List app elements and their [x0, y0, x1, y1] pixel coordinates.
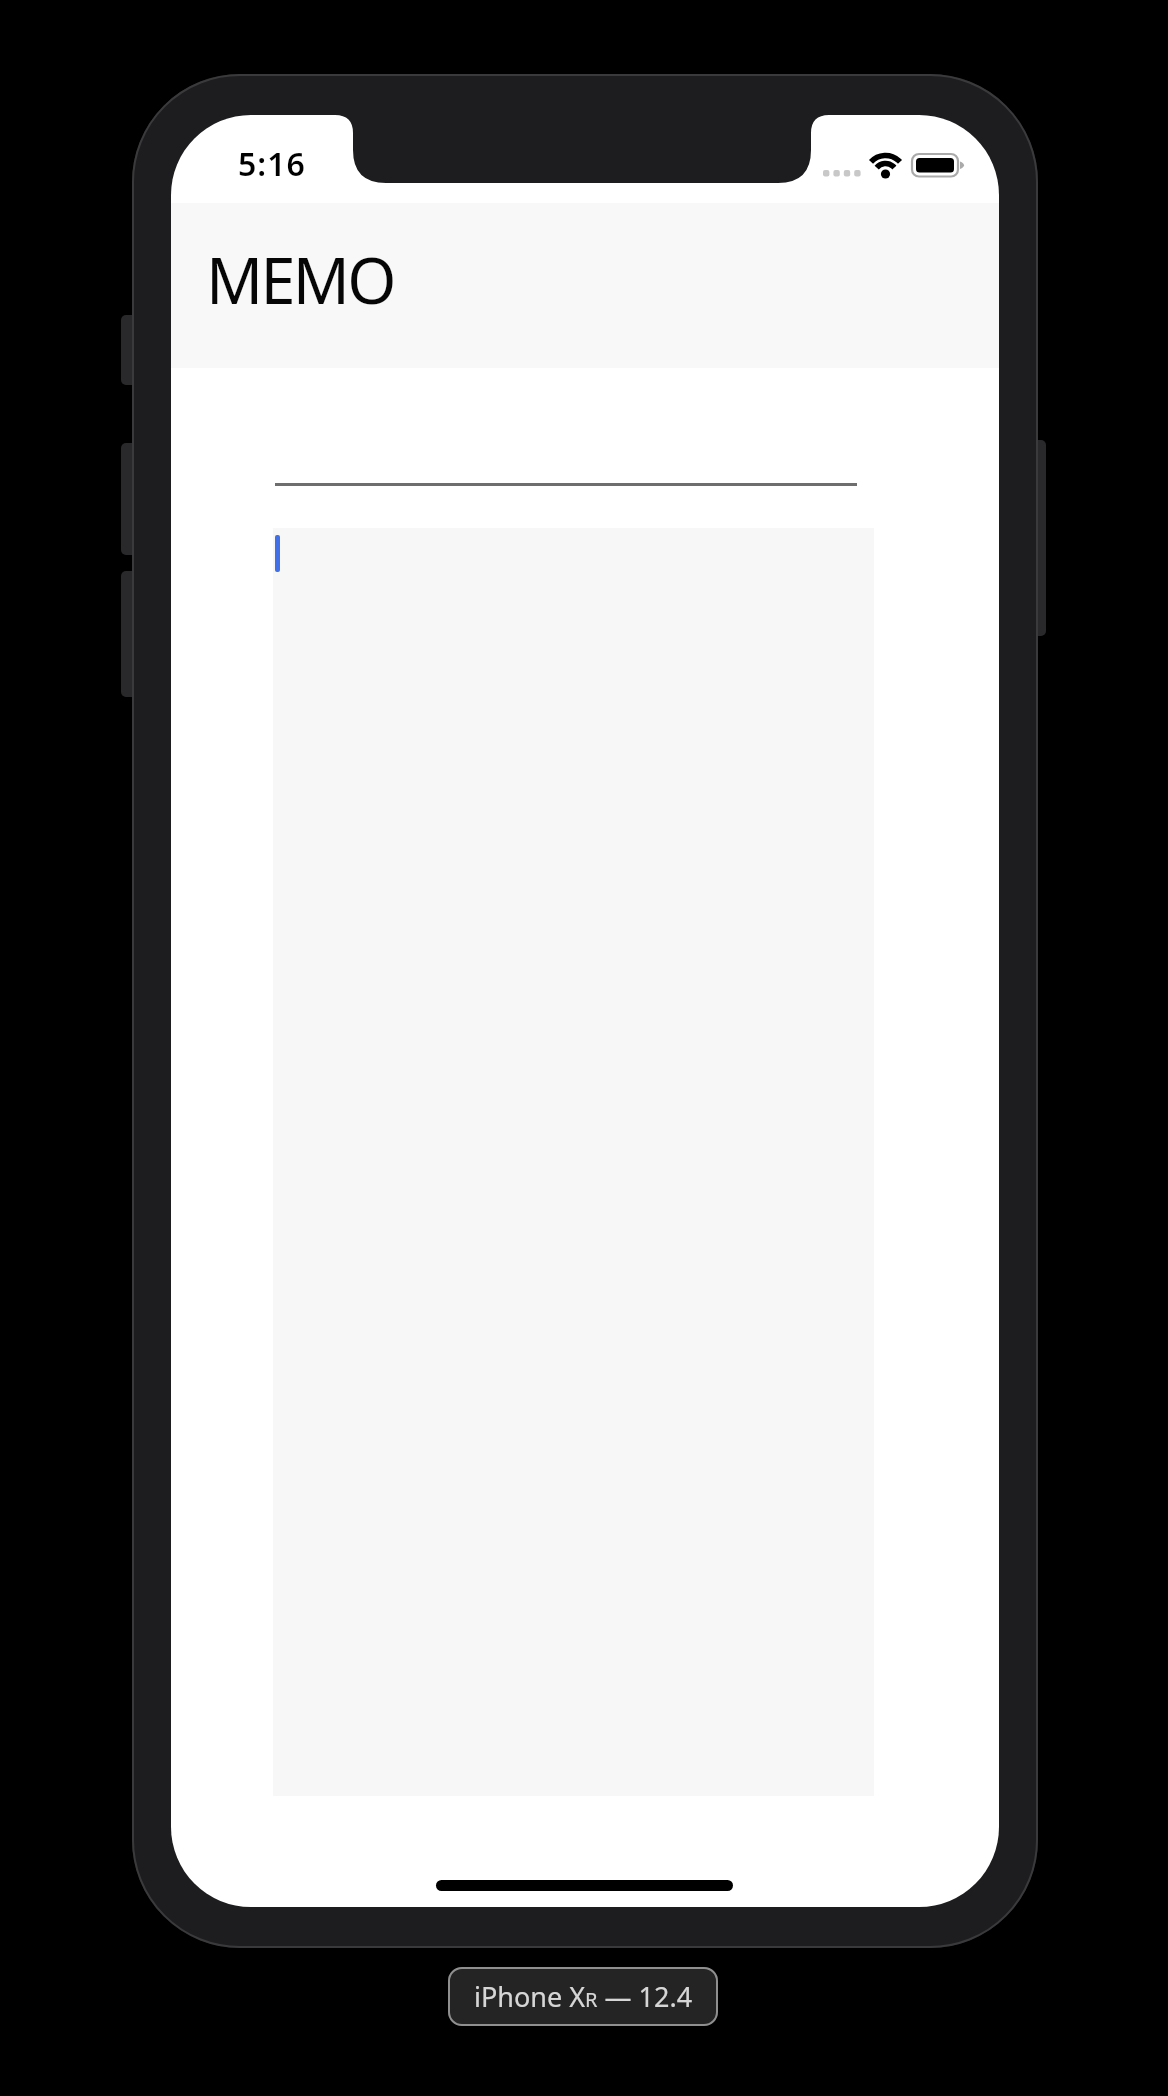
staticText: iPhone XR — 12.4 — [474, 1978, 693, 2015]
staticText: 5:16 — [238, 142, 306, 186]
staticText: MEMO — [206, 237, 394, 323]
button[interactable]: iPhone XR — 12.4 — [448, 1967, 718, 2026]
